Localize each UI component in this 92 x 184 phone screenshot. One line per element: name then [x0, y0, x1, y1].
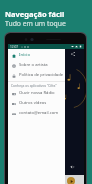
- staticText: Navegação fácil: [5, 9, 65, 19]
- staticText: Política de privacidade: [19, 72, 64, 78]
- staticText: Ouvir nossa Rádio: [19, 90, 55, 96]
- staticText: Início: [19, 52, 30, 58]
- staticText: Outros vídeos: [19, 100, 47, 106]
- button[interactable]: Início: [8, 50, 65, 60]
- staticText: Sobre o artista: [19, 62, 48, 68]
- button[interactable]: Ouvir nossa Rádio: [8, 88, 65, 98]
- button[interactable]: Share: [70, 51, 76, 57]
- staticText: Tudo em um toque: [5, 19, 66, 28]
- staticText: contato@email.com: [19, 110, 59, 116]
- staticText: Conheça os aplicativos "Cifra": [11, 83, 57, 87]
- button[interactable]: contato@email.com: [8, 108, 65, 118]
- staticText: 12:07: [10, 45, 19, 49]
- button[interactable]: [8, 175, 84, 184]
- button[interactable]: Sobre o artista: [8, 60, 65, 70]
- button[interactable]: Outros vídeos: [8, 98, 65, 108]
- button[interactable]: Política de privacidade: [8, 70, 65, 80]
